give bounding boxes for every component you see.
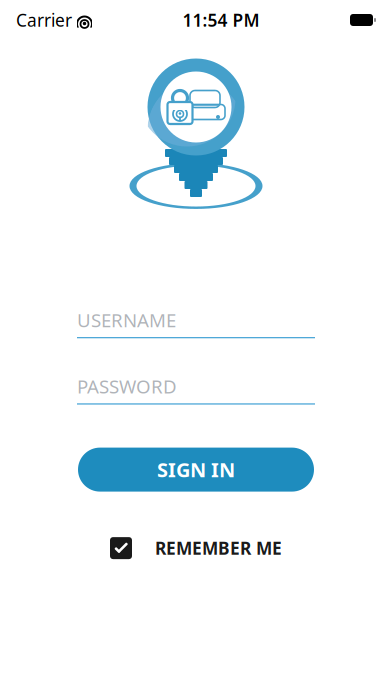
staticText: REMEMBER ME [155, 537, 282, 560]
button[interactable]: REMEMBER ME [110, 537, 282, 560]
button[interactable]: SIGN IN [78, 448, 314, 492]
staticText: PASSWORD [77, 374, 177, 399]
staticText: 11:54 PM [182, 8, 259, 31]
staticText: Carrier [16, 8, 72, 31]
staticText: SIGN IN [157, 456, 235, 483]
staticText: USERNAME [77, 308, 176, 332]
